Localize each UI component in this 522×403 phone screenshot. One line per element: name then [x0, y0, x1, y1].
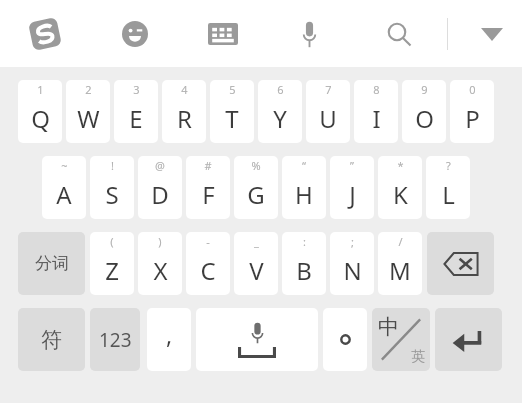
button[interactable]: ! — [90, 156, 134, 219]
button[interactable]: ) — [138, 232, 182, 295]
button[interactable]: Voice input — [289, 14, 329, 54]
button[interactable]: Sogou input method — [25, 14, 65, 54]
staticText: G — [247, 178, 265, 211]
staticText: ” — [350, 158, 354, 173]
button[interactable]: Chinese English toggle — [372, 308, 430, 371]
button[interactable]: @ — [138, 156, 182, 219]
button[interactable]: 7 — [306, 80, 350, 143]
button[interactable]: Hide keyboard — [472, 14, 512, 54]
button[interactable]: Enter — [435, 308, 502, 371]
staticText: F — [202, 178, 215, 211]
staticText: Y — [273, 102, 287, 135]
staticText: 7 — [325, 82, 332, 97]
button[interactable]: / — [378, 232, 422, 295]
staticText: Q — [31, 102, 50, 135]
staticText: ) — [158, 234, 162, 249]
staticText: I — [372, 102, 381, 135]
staticText: R — [177, 102, 192, 135]
staticText: T — [225, 102, 239, 135]
staticText: 英 — [411, 348, 425, 366]
staticText: % — [251, 158, 261, 173]
staticText: L — [442, 178, 455, 211]
button[interactable]: 3 — [114, 80, 158, 143]
staticText: Z — [105, 254, 119, 287]
staticText: E — [129, 102, 143, 135]
button[interactable]: Emoji — [115, 14, 155, 54]
staticText: B — [296, 254, 312, 287]
button[interactable]: ~ — [42, 156, 86, 219]
staticText: C — [200, 254, 216, 287]
staticText: N — [343, 254, 362, 287]
button[interactable]: 8 — [354, 80, 398, 143]
button[interactable]: ? — [426, 156, 470, 219]
staticText: : — [303, 234, 306, 249]
staticText: 符 — [41, 327, 62, 353]
staticText: # — [204, 158, 212, 173]
button[interactable]: : — [282, 232, 326, 295]
staticText: 1 — [37, 82, 44, 97]
staticText: P — [465, 102, 480, 135]
staticText: ~ — [61, 158, 68, 173]
button[interactable]: 6 — [258, 80, 302, 143]
button[interactable]: ” — [330, 156, 374, 219]
button[interactable]: 0 — [450, 80, 494, 143]
staticText: A — [56, 178, 72, 211]
button[interactable]: , — [147, 308, 191, 371]
staticText: D — [151, 178, 169, 211]
staticText: 4 — [181, 82, 188, 97]
staticText: J — [349, 178, 356, 211]
button[interactable]: 9 — [402, 80, 446, 143]
staticText: * — [397, 158, 404, 173]
staticText: 2 — [85, 82, 92, 97]
button[interactable]: Space — [196, 308, 318, 371]
button[interactable]: 1 — [18, 80, 62, 143]
button[interactable]: _ — [234, 232, 278, 295]
staticText: ? — [446, 158, 451, 173]
staticText: ( — [110, 234, 114, 249]
staticText: V — [249, 254, 264, 287]
staticText: 3 — [133, 82, 140, 97]
staticText: 8 — [373, 82, 380, 97]
staticText: 6 — [277, 82, 284, 97]
staticText: 5 — [229, 82, 236, 97]
staticText: S — [105, 178, 119, 211]
staticText: X — [153, 254, 168, 287]
staticText: 9 — [421, 82, 428, 97]
button[interactable]: 5 — [210, 80, 254, 143]
button[interactable]: # — [186, 156, 230, 219]
button[interactable]: - — [186, 232, 230, 295]
button[interactable]: 123 — [90, 308, 140, 371]
staticText: @ — [155, 158, 165, 173]
staticText: K — [393, 178, 408, 211]
button[interactable]: Keyboard layout — [203, 14, 243, 54]
button[interactable]: 4 — [162, 80, 206, 143]
staticText: / — [398, 234, 403, 249]
staticText: U — [319, 102, 337, 135]
button[interactable] — [323, 308, 367, 371]
button[interactable]: 分词 — [18, 232, 85, 295]
button[interactable]: % — [234, 156, 278, 219]
button[interactable]: Search — [379, 14, 419, 54]
button[interactable]: 2 — [66, 80, 110, 143]
staticText: ; — [351, 234, 354, 249]
staticText: 中 — [378, 314, 399, 340]
button[interactable]: ; — [330, 232, 374, 295]
button[interactable]: 符 — [18, 308, 85, 371]
staticText: - — [206, 234, 210, 249]
staticText: ! — [111, 158, 114, 173]
staticText: 分词 — [35, 253, 69, 274]
button[interactable]: “ — [282, 156, 326, 219]
button[interactable]: * — [378, 156, 422, 219]
staticText: O — [415, 102, 434, 135]
staticText: , — [166, 319, 173, 350]
button[interactable]: Backspace — [427, 232, 494, 295]
staticText: “ — [302, 158, 306, 173]
staticText: M — [389, 254, 411, 287]
staticText: _ — [254, 234, 259, 249]
staticText: 123 — [99, 327, 132, 353]
staticText: 0 — [469, 82, 476, 97]
staticText: H — [295, 178, 313, 211]
button[interactable]: ( — [90, 232, 134, 295]
staticText: W — [77, 102, 100, 135]
